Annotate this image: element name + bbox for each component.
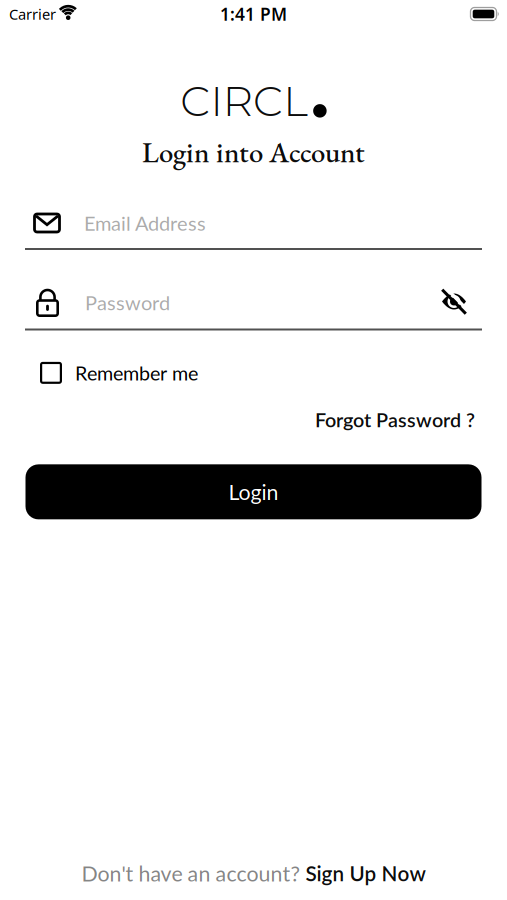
staticText: CIRCL xyxy=(180,75,308,127)
staticText: Login into Account xyxy=(142,133,365,171)
staticText: Remember me xyxy=(75,361,198,385)
staticText: 1:41 PM xyxy=(220,2,287,25)
staticText: Sign Up Now xyxy=(305,861,425,886)
button[interactable]: Login xyxy=(25,464,481,519)
button[interactable]: Sign Up Now xyxy=(81,860,425,886)
staticText: Don't have an account? xyxy=(81,860,305,886)
staticText: Email Address xyxy=(84,211,206,235)
button[interactable]: Forgot Password ? xyxy=(315,408,475,431)
staticText: Login xyxy=(228,479,278,505)
staticText: Carrier xyxy=(9,4,56,24)
staticText: Forgot Password ? xyxy=(315,408,475,431)
staticText: Password xyxy=(85,290,170,314)
button[interactable]: Show password xyxy=(440,288,482,316)
button[interactable]: Remember me xyxy=(40,361,198,385)
